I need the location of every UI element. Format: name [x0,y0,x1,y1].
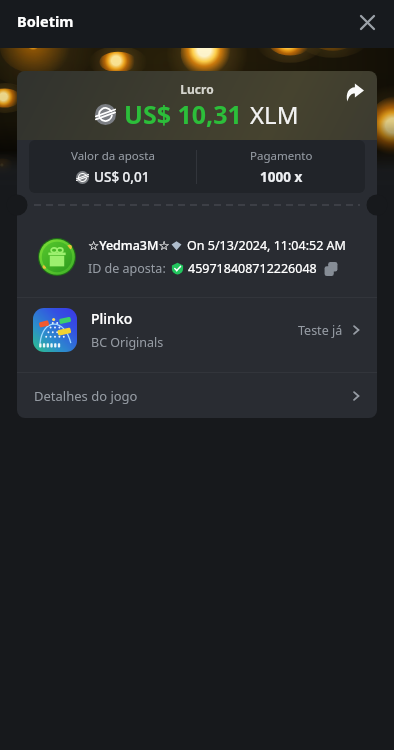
staticText: ID de aposta: [88,260,166,277]
staticText: Valor da aposta [71,148,155,164]
button[interactable]: Plinko [17,298,377,372]
staticText: Lucro [17,81,377,97]
staticText: XLM [250,98,299,131]
staticText: On 5/13/2024, 11:04:52 AM [187,237,346,254]
staticText: Plinko [91,309,133,328]
button[interactable]: Copy bet ID [324,262,338,276]
staticText: US$ 10,31 [124,97,242,131]
button[interactable]: Share [342,80,366,104]
staticText: 1000 x [260,168,303,186]
staticText: Detalhes do jogo [34,387,349,405]
staticText: 459718408712226048 [188,260,317,277]
staticText: ☆Yedma3M☆ [88,237,170,254]
staticText: Boletim [17,11,74,31]
staticText: Teste já [298,322,343,339]
staticText: BC Originals [91,334,164,351]
button[interactable]: Close [354,9,380,35]
staticText: US$ 0,01 [94,168,150,186]
staticText: Pagamento [250,148,313,164]
button[interactable]: Detalhes do jogo [17,373,377,418]
